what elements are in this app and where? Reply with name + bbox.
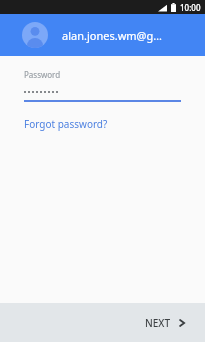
staticText: NEXT <box>145 316 171 330</box>
other: Account avatar <box>22 22 48 48</box>
button[interactable]: NEXT <box>137 309 193 337</box>
button[interactable] <box>24 86 181 102</box>
button[interactable]: Forgot password? <box>24 117 108 131</box>
staticText: Forgot password? <box>24 117 108 131</box>
staticText: 10:00 <box>180 2 201 13</box>
button[interactable]: Account avatar <box>0 14 205 56</box>
staticText: alan.jones.wm@g… <box>62 28 162 43</box>
staticText: Password <box>24 69 61 80</box>
